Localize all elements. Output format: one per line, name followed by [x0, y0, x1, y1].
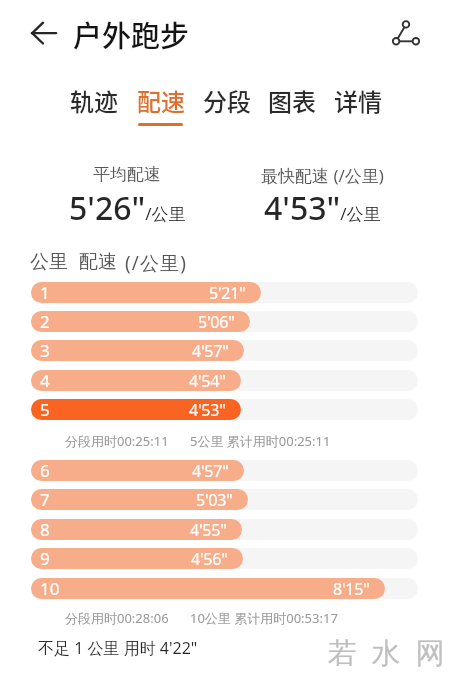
staticText: 5'06": [198, 311, 235, 332]
button[interactable]: 10: [31, 578, 418, 599]
button[interactable]: 5: [31, 399, 418, 420]
staticText: 8: [40, 519, 50, 539]
button[interactable]: 2: [31, 311, 418, 332]
button[interactable]: 6: [31, 460, 418, 481]
staticText: 5'03": [196, 489, 233, 510]
staticText: 分段用时00:25:11: [65, 432, 169, 450]
staticText: 分段用时00:28:06: [65, 609, 169, 627]
staticText: 详情: [334, 83, 382, 118]
staticText: 配速: [79, 250, 117, 274]
staticText: 配速: [137, 83, 185, 118]
staticText: 图表: [268, 83, 316, 118]
button[interactable]: 4: [31, 370, 418, 391]
staticText: 公里: [30, 250, 68, 274]
staticText: 分段: [203, 83, 251, 118]
staticText: 平均配速: [93, 164, 161, 185]
button[interactable]: 1: [31, 282, 418, 303]
staticText: 户外跑步: [73, 13, 190, 55]
staticText: 10公里 累计用时00:53:17: [190, 609, 338, 627]
button[interactable]: 3: [31, 340, 418, 361]
staticText: 3: [40, 340, 50, 360]
button[interactable]: 图表: [262, 84, 322, 128]
staticText: 4'54": [189, 370, 226, 391]
button[interactable]: Share: [391, 19, 421, 49]
staticText: 10: [40, 578, 60, 598]
staticText: 4'57": [192, 460, 229, 481]
button[interactable]: 9: [31, 548, 418, 569]
staticText: 5'21": [209, 282, 246, 303]
staticText: 7: [40, 489, 50, 509]
button[interactable]: 配速: [131, 84, 191, 128]
staticText: 4'55": [190, 519, 227, 540]
staticText: 2: [40, 311, 50, 331]
staticText: 不足 1 公里 用时 4'22": [38, 637, 198, 659]
staticText: 6: [40, 460, 50, 480]
button[interactable]: Back: [24, 17, 56, 49]
button[interactable]: 详情: [328, 84, 388, 128]
staticText: 8'15": [333, 578, 370, 599]
staticText: 4'53"/公里: [264, 186, 381, 230]
staticText: 最快配速 (/公里): [261, 164, 384, 187]
staticText: 5: [40, 399, 50, 419]
staticText: 1: [40, 282, 50, 302]
staticText: 5'26"/公里: [69, 186, 186, 230]
staticText: (/公里): [125, 250, 187, 276]
staticText: 4'53": [189, 399, 226, 420]
button[interactable]: 7: [31, 489, 418, 510]
staticText: 4: [40, 370, 50, 390]
button[interactable]: 8: [31, 519, 418, 540]
button[interactable]: 分段: [197, 84, 257, 128]
staticText: 4'56": [191, 548, 228, 569]
staticText: 轨迹: [70, 83, 118, 118]
button[interactable]: 轨迹: [64, 84, 124, 128]
staticText: 5公里 累计用时00:25:11: [190, 432, 331, 450]
staticText: 9: [40, 548, 50, 568]
staticText: 4'57": [192, 340, 229, 361]
staticText: 若水网: [320, 635, 450, 672]
